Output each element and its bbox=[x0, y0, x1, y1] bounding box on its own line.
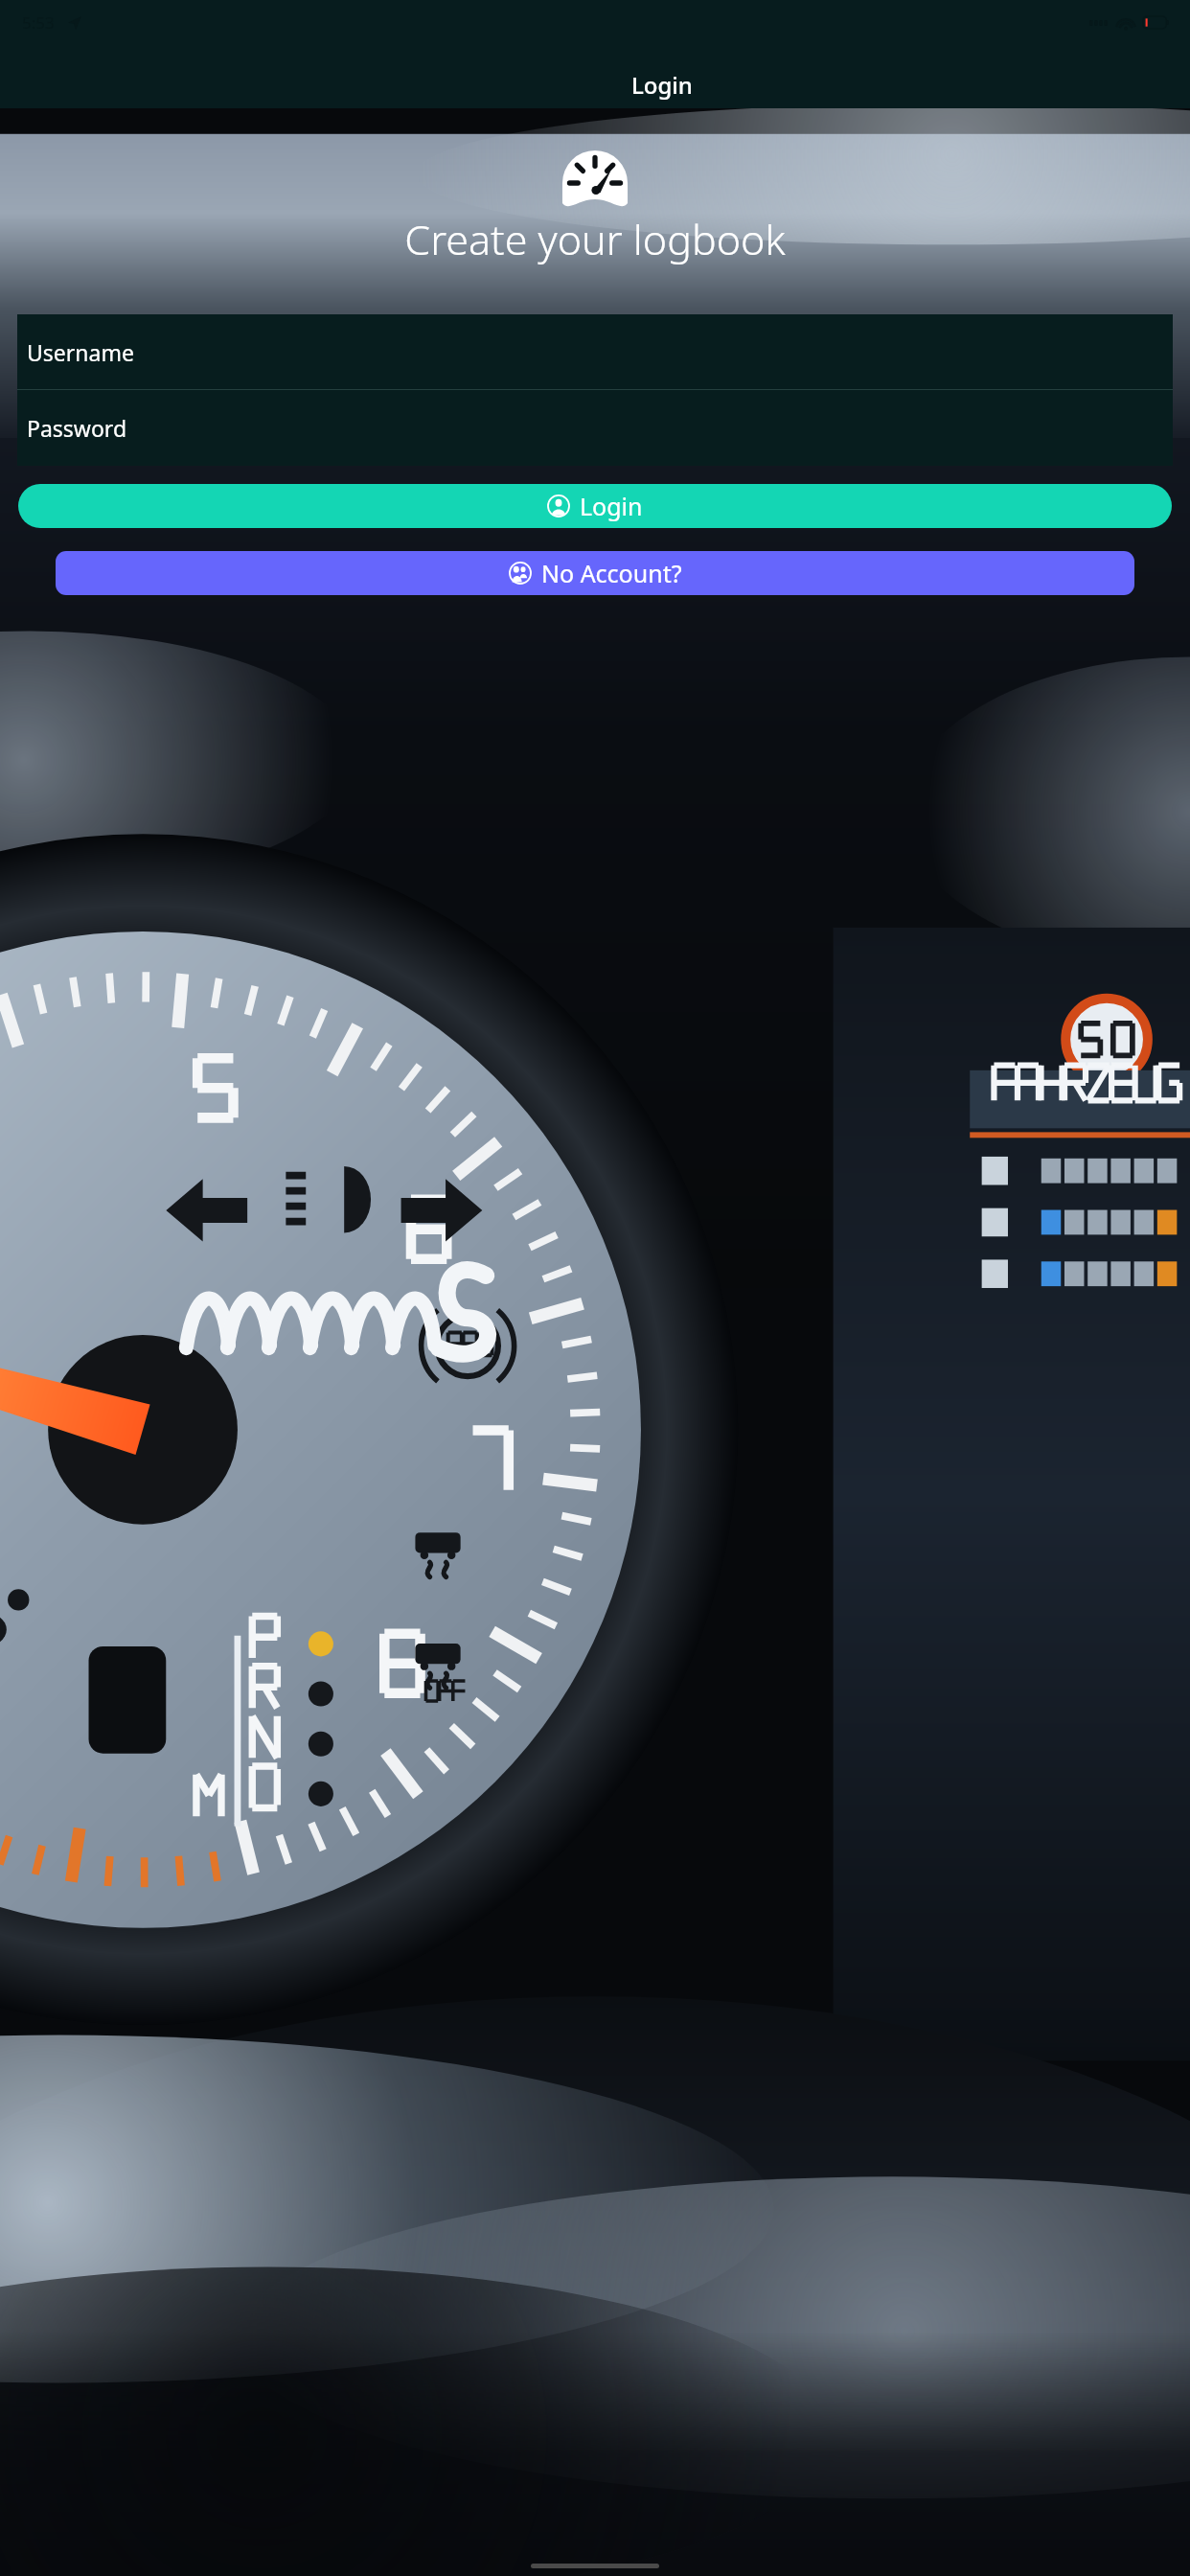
button[interactable]: Password bbox=[17, 390, 1173, 466]
button[interactable]: Username bbox=[17, 314, 1173, 389]
staticText: Username bbox=[27, 337, 134, 367]
button[interactable]: No Account? bbox=[56, 551, 1134, 595]
staticText: Login bbox=[580, 490, 643, 522]
staticText: No Account? bbox=[541, 557, 682, 589]
staticText: Create your logbook bbox=[0, 211, 1190, 267]
staticText: Password bbox=[27, 413, 127, 443]
button[interactable]: Login bbox=[18, 484, 1172, 528]
staticText: Login bbox=[631, 69, 693, 101]
